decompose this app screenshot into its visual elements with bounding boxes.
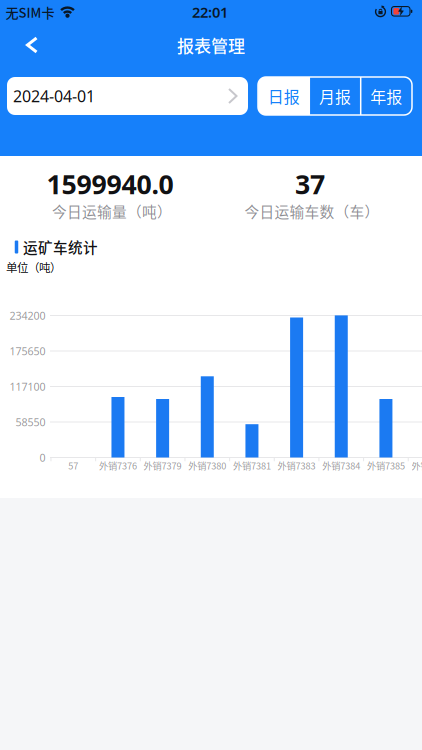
staticText: 单位（吨）	[6, 259, 61, 275]
staticText: 175650	[9, 344, 45, 358]
staticText: 外销7384	[322, 459, 360, 472]
staticText: 234200	[9, 308, 45, 323]
staticText: 1599940.0	[46, 166, 173, 202]
staticText: 今日运输量（吨）	[52, 200, 172, 222]
button[interactable]: 日报	[258, 77, 309, 115]
staticText: 外销7385	[367, 459, 405, 472]
button[interactable]: 年报	[361, 77, 412, 115]
staticText: 月报	[319, 84, 351, 108]
staticText: 日报	[268, 84, 300, 108]
staticText: 2024-04-01	[13, 85, 95, 107]
staticText: 年报	[370, 84, 402, 108]
staticText: 无SIM卡	[5, 2, 54, 21]
staticText: 运矿车统计	[23, 236, 98, 257]
staticText: 外销7380	[188, 459, 226, 472]
staticText: 外销7383	[278, 459, 316, 472]
staticText: 58550	[15, 415, 45, 429]
staticText: 0	[39, 450, 45, 465]
staticText: 外销7381	[233, 459, 271, 472]
staticText: 外销7376	[99, 459, 137, 472]
staticText: 外销7379	[144, 459, 182, 472]
staticText: 报表管理	[177, 33, 245, 57]
staticText: 57	[68, 459, 78, 472]
button[interactable]: 月报	[309, 77, 361, 115]
staticText: 外销7386	[412, 459, 422, 472]
staticText: 今日运输车数（车）	[244, 200, 379, 222]
staticText: 117100	[9, 379, 45, 394]
staticText: 22:01	[192, 2, 228, 22]
button[interactable]: Back	[20, 34, 44, 56]
button[interactable]: 2024-04-01	[7, 77, 248, 115]
staticText: 37	[295, 166, 325, 202]
